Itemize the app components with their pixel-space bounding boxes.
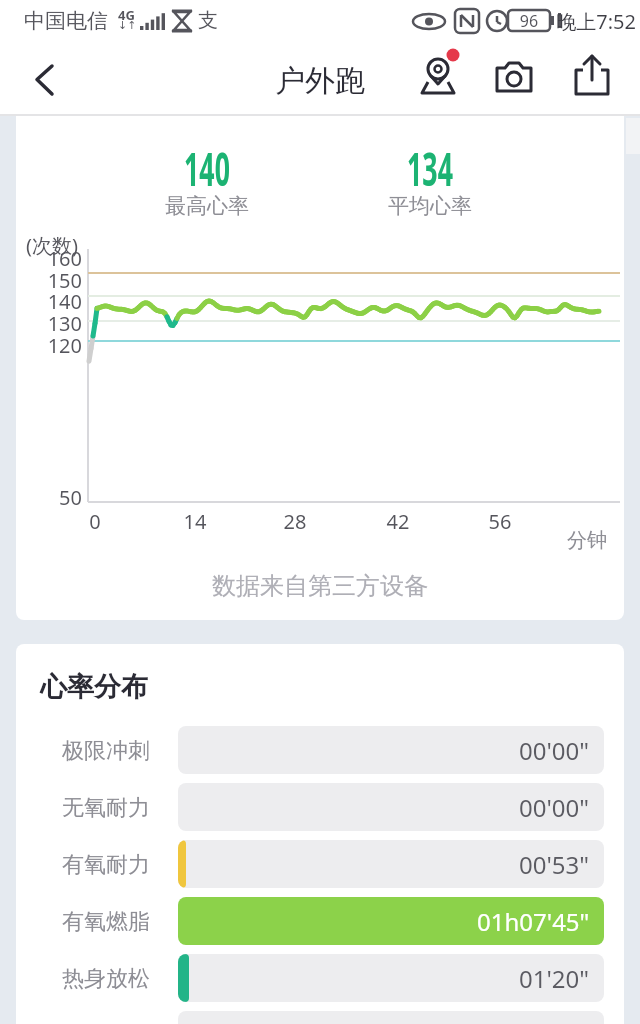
staticText: 数据来自第三方设备	[16, 571, 624, 601]
staticText: 96	[512, 10, 546, 32]
staticText: 56	[480, 508, 520, 535]
staticText: 42	[378, 508, 418, 535]
staticText: 0	[75, 508, 115, 535]
staticText: 01'20"	[519, 962, 590, 995]
staticText: 4G	[118, 6, 148, 24]
button[interactable]: 00'00"	[178, 783, 604, 831]
staticText: 130	[32, 310, 82, 337]
button[interactable]: 01'20"	[178, 954, 604, 1002]
staticText: 00'00"	[519, 734, 590, 767]
staticText: 最高心率	[147, 193, 267, 219]
staticText: 分钟	[546, 528, 607, 553]
button[interactable]	[20, 52, 70, 102]
staticText: 160	[32, 245, 82, 272]
staticText: 150	[32, 267, 82, 294]
staticText: 支	[198, 8, 224, 33]
staticText: 140	[172, 137, 242, 200]
staticText: 有氧耐力	[36, 851, 150, 879]
staticText: (次数)	[26, 232, 106, 259]
staticText: 00'53"	[519, 848, 590, 881]
staticText: 中国电信	[24, 8, 144, 34]
staticText: 50	[32, 484, 82, 511]
staticText: 平均心率	[370, 193, 490, 219]
staticText: 户外跑	[220, 62, 420, 100]
button[interactable]	[492, 54, 540, 102]
staticText: ↓↑	[118, 19, 148, 32]
staticText: 有氧燃脂	[36, 908, 150, 936]
staticText: 晚上7:52	[551, 8, 636, 35]
staticText: 热身放松	[36, 965, 150, 993]
staticText: 无氧耐力	[36, 794, 150, 822]
staticText: 01h07'45"	[477, 905, 590, 938]
staticText: 极限冲刺	[36, 737, 150, 765]
button[interactable]	[570, 52, 618, 100]
button[interactable]: 00'53"	[178, 840, 604, 888]
staticText: 134	[395, 137, 465, 200]
staticText: 28	[275, 508, 315, 535]
button[interactable]	[414, 52, 466, 104]
staticText: 14	[175, 508, 215, 535]
staticText: 心率分布	[40, 670, 240, 704]
staticText: 140	[32, 288, 82, 315]
button[interactable]: 00'00"	[178, 726, 604, 774]
button[interactable]: 01h07'45"	[178, 897, 604, 945]
staticText: 120	[32, 332, 82, 359]
staticText: 00'00"	[519, 791, 590, 824]
